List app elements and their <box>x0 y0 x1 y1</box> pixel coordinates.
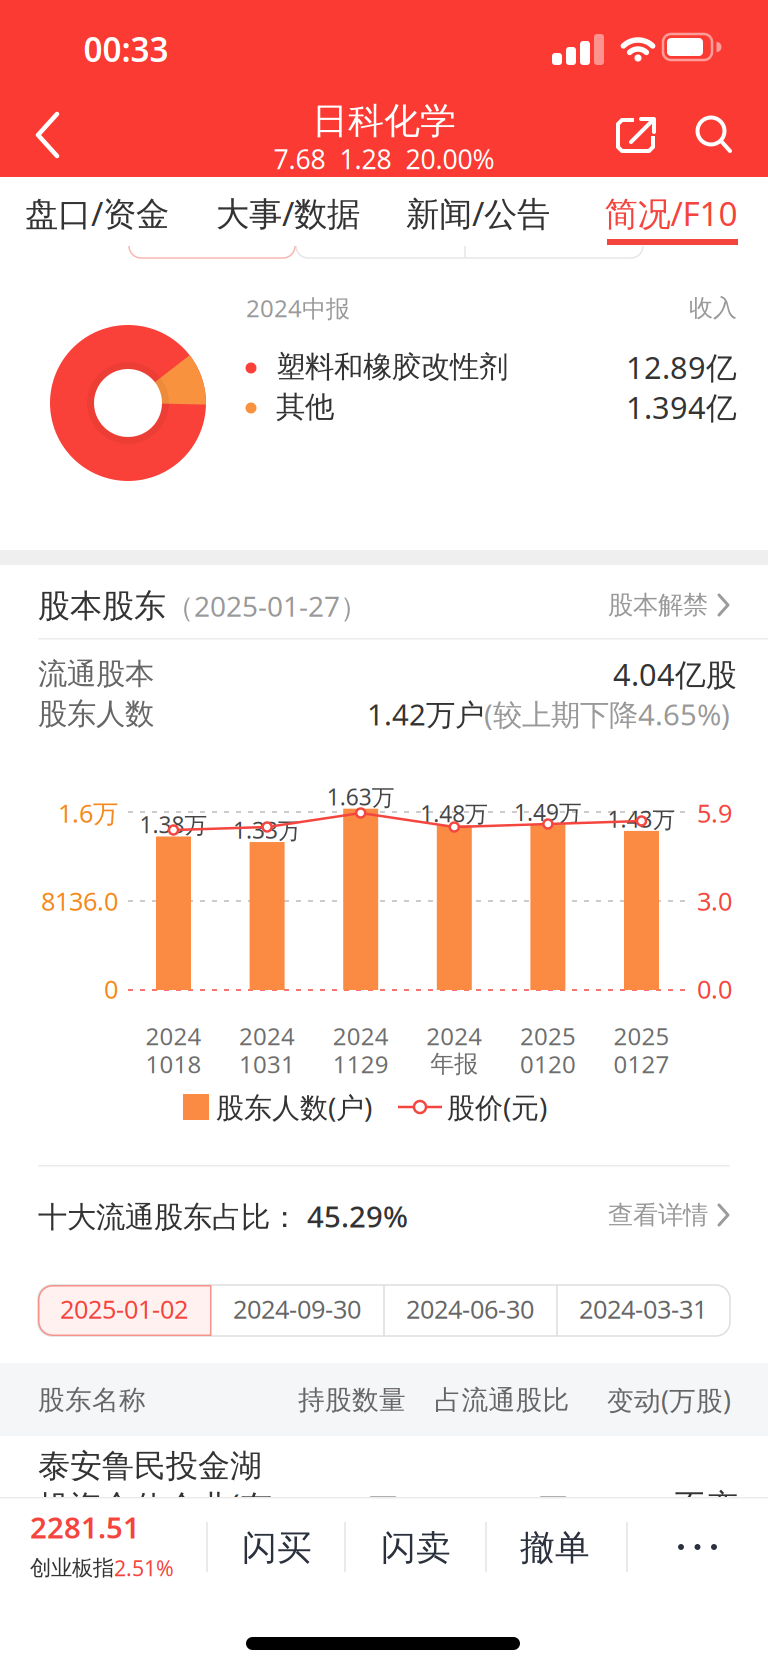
staticText: 5.9 <box>697 796 732 830</box>
staticText: 00:33 <box>83 27 168 71</box>
button[interactable]: More <box>0 0 768 1663</box>
staticText: 流通股本 <box>38 656 154 692</box>
staticText: 股本解禁 <box>608 589 708 620</box>
staticText: — <box>539 1475 567 1513</box>
staticText: 股东名称 <box>38 1384 146 1416</box>
staticText: 1.63万 <box>327 782 395 812</box>
staticText: 2281.51 <box>30 1507 140 1546</box>
staticText: 0127 <box>613 1048 669 1080</box>
button[interactable]: Search <box>0 0 768 1663</box>
button[interactable]: 股本解禁 <box>0 0 768 1663</box>
staticText: 1.6万 <box>58 796 118 830</box>
staticText: 创业板指 <box>30 1555 114 1581</box>
staticText: 新闻/公告 <box>406 191 550 235</box>
staticText: 撤单 <box>520 1527 590 1569</box>
button[interactable]: 闪买 <box>0 0 768 1663</box>
button[interactable]: 盘口/资金 <box>0 0 768 1663</box>
staticText: 2025-01-02 <box>60 1292 188 1326</box>
staticText: 年报 <box>430 1049 478 1079</box>
staticText: 不变 <box>674 1486 738 1526</box>
staticText: (较上期下降4.65%) <box>484 694 730 733</box>
staticText: 1.42万户 <box>367 694 484 733</box>
staticText: 1129 <box>333 1048 389 1080</box>
staticText: 收入 <box>689 293 737 323</box>
staticText: 2024 <box>239 1020 295 1052</box>
staticText: 泰安鲁民投金湖 <box>38 1446 262 1486</box>
staticText: 2024 <box>145 1020 201 1052</box>
staticText: 占流通股比 <box>434 1384 569 1416</box>
button[interactable]: 2024-03-31 <box>0 0 768 1663</box>
staticText: 1018 <box>145 1048 201 1080</box>
button[interactable]: 闪卖 <box>0 0 768 1663</box>
staticText: 查看详情 <box>608 1199 708 1230</box>
staticText: 大事/数据 <box>216 191 360 235</box>
staticText: （2025-01-27） <box>166 587 368 625</box>
staticText: 变动(万股) <box>607 1382 731 1418</box>
staticText: 股价(元) <box>447 1088 547 1126</box>
staticText: 12.89亿 <box>626 347 737 387</box>
staticText: 塑料和橡胶改性剂 <box>276 349 508 385</box>
staticText: 8136.0 <box>41 884 118 918</box>
button[interactable]: 查看详情 <box>0 0 768 1663</box>
staticText: 2024-09-30 <box>233 1292 361 1326</box>
staticText: 2024 <box>333 1020 389 1052</box>
staticText: 其他 <box>276 389 334 425</box>
staticText: 2024 <box>426 1020 482 1052</box>
button[interactable]: 2025-01-02 <box>0 0 768 1663</box>
staticText: 持股数量 <box>298 1384 406 1416</box>
staticText: 7.68 1.28 20.00% <box>273 141 494 177</box>
staticText: 1.48万 <box>420 798 488 828</box>
button[interactable]: 撤单 <box>0 0 768 1663</box>
staticText: — <box>369 1475 397 1513</box>
staticText: 2024-03-31 <box>579 1292 707 1326</box>
staticText: 盘口/资金 <box>25 191 169 235</box>
staticText: 3.0 <box>697 884 732 918</box>
staticText: 1.49万 <box>514 797 582 827</box>
staticText: 2025 <box>613 1020 669 1052</box>
button[interactable]: 简况/F10 <box>0 0 768 1663</box>
staticText: 1031 <box>239 1048 295 1080</box>
staticText: 十大流通股东占比： 45.29% <box>38 1196 408 1235</box>
staticText: 日科化学 <box>312 99 456 143</box>
staticText: 股本股东 <box>38 586 166 626</box>
button[interactable]: 新闻/公告 <box>0 0 768 1663</box>
staticText: 0120 <box>520 1048 576 1080</box>
staticText: 2025 <box>520 1020 576 1052</box>
staticText: 0 <box>104 972 118 1006</box>
staticText: 2.51% <box>114 1554 174 1582</box>
staticText: 1.43万 <box>607 804 675 834</box>
button[interactable]: 泰安鲁民投金湖 <box>0 0 768 1663</box>
button[interactable]: Share <box>0 0 768 1663</box>
staticText: 股东人数 <box>38 696 154 732</box>
staticText: 股东人数(户) <box>216 1088 372 1126</box>
staticText: 0.0 <box>697 972 732 1006</box>
staticText: 2024中报 <box>246 292 350 324</box>
staticText: 闪买 <box>242 1527 312 1569</box>
staticText: 1.33万 <box>233 815 301 845</box>
button[interactable]: 2024-09-30 <box>0 0 768 1663</box>
button[interactable]: 大事/数据 <box>0 0 768 1663</box>
button[interactable]: 2024-06-30 <box>0 0 768 1663</box>
staticText: 4.04亿股 <box>613 654 737 694</box>
staticText: 投资合伙企业(有 <box>38 1485 272 1527</box>
button[interactable]: Back <box>0 0 768 1663</box>
staticText: 闪卖 <box>381 1527 451 1569</box>
staticText: 简况/F10 <box>604 191 737 235</box>
staticText: 1.394亿 <box>626 387 737 427</box>
staticText: 2024-06-30 <box>406 1292 534 1326</box>
staticText: 1.38万 <box>139 809 207 839</box>
